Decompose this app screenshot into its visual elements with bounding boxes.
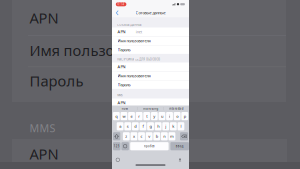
button[interactable]: b <box>153 132 160 140</box>
staticText: interesting <box>142 107 158 110</box>
button[interactable]: q <box>113 112 120 120</box>
staticText: t <box>146 113 147 119</box>
button[interactable]: 123 <box>113 142 120 150</box>
button[interactable]: Delete <box>180 132 188 140</box>
button[interactable]: f <box>139 122 146 130</box>
button[interactable]: w <box>120 112 127 120</box>
staticText: APN <box>117 100 125 105</box>
staticText: ввод <box>176 144 184 148</box>
button[interactable]: Recording timer <box>116 2 126 6</box>
staticText: пробел <box>144 144 155 148</box>
staticText: “now” <box>121 107 129 110</box>
button[interactable]: interested <box>164 105 189 112</box>
staticText: MMS <box>117 93 122 97</box>
staticText: g <box>149 124 151 129</box>
staticText: s <box>127 124 129 129</box>
button[interactable]: Пароль <box>112 45 189 54</box>
staticText: Имя пользователя <box>117 38 150 43</box>
staticText: d <box>134 124 136 129</box>
button[interactable]: пробел <box>130 142 169 150</box>
button[interactable]: p <box>181 112 188 120</box>
button[interactable]: Dictation <box>178 158 182 162</box>
button[interactable]: y <box>151 112 158 120</box>
staticText: e <box>130 113 132 119</box>
staticText: z <box>125 134 127 139</box>
button[interactable]: APN <box>112 27 189 36</box>
staticText: СОТОВЫЕ ДАННЫЕ <box>117 23 141 27</box>
staticText: a <box>119 124 121 129</box>
staticText: APN <box>117 64 125 69</box>
staticText: q <box>115 113 117 119</box>
button[interactable]: o <box>174 112 180 120</box>
staticText: p <box>184 113 186 119</box>
staticText: k <box>172 124 174 129</box>
button[interactable]: e <box>128 112 135 120</box>
staticText: u <box>161 113 163 119</box>
button[interactable]: j <box>162 122 169 130</box>
staticText: Пароль <box>30 71 84 90</box>
button[interactable]: interesting <box>138 105 163 112</box>
staticText: APN <box>30 144 59 163</box>
button[interactable]: u <box>158 112 165 120</box>
button[interactable]: Shift <box>113 132 120 140</box>
staticText: Сотовые данные <box>135 10 165 15</box>
button[interactable]: ввод <box>170 142 189 150</box>
button[interactable]: Пароль <box>112 80 189 89</box>
staticText: 123 <box>114 144 120 148</box>
button[interactable]: l <box>177 122 184 130</box>
staticText: h <box>157 124 159 129</box>
button[interactable]: Emoji keyboard <box>121 142 129 150</box>
staticText: 0:14 <box>118 2 125 6</box>
button[interactable]: r <box>136 112 142 120</box>
staticText: n <box>163 134 165 139</box>
staticText: interested <box>169 107 184 110</box>
button[interactable]: n <box>161 132 168 140</box>
staticText: Имя пользователя <box>117 73 150 78</box>
staticText: x <box>133 134 135 139</box>
button[interactable]: v <box>146 132 152 140</box>
staticText: b <box>156 134 158 139</box>
staticText: m <box>170 134 174 139</box>
button[interactable]: z <box>123 132 130 140</box>
staticText: o <box>176 113 178 119</box>
staticText: APN <box>30 8 59 27</box>
button[interactable]: d <box>132 122 139 130</box>
button[interactable]: s <box>124 122 131 130</box>
staticText: НАСТРОЙКА LTE ДЛЯ ВЫЗОВОВ <box>117 58 160 61</box>
button[interactable]: m <box>168 132 175 140</box>
staticText: l <box>180 124 181 129</box>
button[interactable]: x <box>130 132 137 140</box>
staticText: i <box>169 113 170 119</box>
staticText: r <box>138 113 140 119</box>
staticText: Пароль <box>117 82 130 87</box>
staticText: w <box>122 113 125 119</box>
button[interactable]: g <box>147 122 154 130</box>
staticText: APN <box>117 29 125 34</box>
staticText: j <box>165 124 166 129</box>
button[interactable]: Back <box>115 8 121 17</box>
staticText: inet <box>136 29 142 34</box>
button[interactable]: “now” <box>112 105 137 112</box>
button[interactable]: k <box>170 122 177 130</box>
staticText: Пароль <box>117 47 130 52</box>
staticText: y <box>153 113 155 119</box>
button[interactable]: t <box>143 112 150 120</box>
staticText: c <box>140 134 142 139</box>
staticText: f <box>142 124 143 129</box>
button[interactable]: a <box>117 122 123 130</box>
button[interactable]: h <box>155 122 161 130</box>
button[interactable]: APN <box>112 98 189 107</box>
staticText: Имя пользова <box>30 40 131 60</box>
button[interactable]: Имя пользователя <box>112 71 189 80</box>
button[interactable]: Имя пользователя <box>112 36 189 45</box>
staticText: MMS <box>30 121 56 135</box>
button[interactable]: c <box>138 132 145 140</box>
button[interactable]: APN <box>112 62 189 71</box>
button[interactable]: Switch keyboard <box>116 158 120 162</box>
button[interactable]: i <box>166 112 173 120</box>
staticText: v <box>148 134 150 139</box>
